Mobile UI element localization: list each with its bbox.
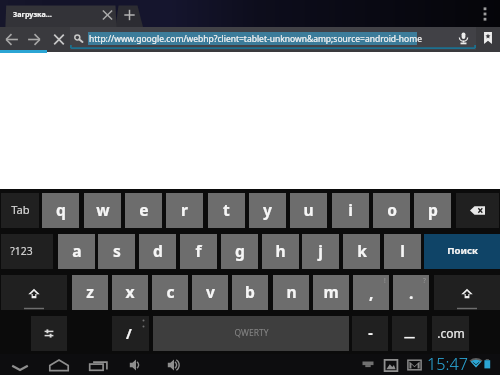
button[interactable]: m bbox=[313, 275, 349, 310]
button[interactable]: Поиск bbox=[424, 234, 500, 269]
staticText: a bbox=[72, 240, 82, 261]
button[interactable]: c bbox=[152, 275, 188, 310]
button[interactable]: l bbox=[384, 234, 421, 269]
button[interactable]: Volume down bbox=[128, 357, 150, 373]
button[interactable]: i bbox=[332, 193, 369, 228]
button[interactable]: — bbox=[392, 316, 427, 351]
staticText: Поиск bbox=[447, 244, 478, 257]
button[interactable]: QWERTY bbox=[153, 316, 349, 351]
staticText: - bbox=[368, 323, 373, 342]
staticText: p bbox=[428, 199, 438, 220]
staticText: r bbox=[181, 199, 188, 220]
button[interactable]: t bbox=[208, 193, 245, 228]
staticText: x bbox=[125, 281, 135, 302]
button[interactable]: a bbox=[58, 234, 95, 269]
staticText: . bbox=[409, 282, 414, 303]
staticText: t bbox=[223, 199, 230, 220]
staticText: ?123 bbox=[10, 244, 33, 258]
button[interactable]: b bbox=[232, 275, 268, 310]
button[interactable]: Backspace bbox=[456, 193, 499, 228]
staticText: q bbox=[56, 199, 66, 220]
staticText: Загрузка… bbox=[13, 9, 52, 19]
button[interactable]: f bbox=[180, 234, 217, 269]
staticText: z bbox=[86, 281, 94, 302]
staticText: j bbox=[318, 240, 323, 261]
staticText: g bbox=[235, 240, 245, 261]
staticText: i bbox=[348, 199, 353, 220]
button[interactable]: Back bbox=[1, 28, 23, 51]
button[interactable]: Bookmarks bbox=[482, 32, 494, 44]
button[interactable]: w bbox=[84, 193, 121, 228]
staticText: d bbox=[153, 240, 163, 261]
button[interactable]: r bbox=[166, 193, 203, 228]
button[interactable]: g bbox=[221, 234, 258, 269]
button[interactable]: Shift bbox=[434, 275, 500, 310]
button[interactable]: Stop loading bbox=[48, 28, 70, 51]
button[interactable]: Hide keyboard bbox=[10, 357, 30, 372]
staticText: u bbox=[303, 199, 314, 220]
button[interactable]: Search bbox=[71, 30, 85, 47]
button[interactable]: Close tab bbox=[99, 7, 116, 23]
button[interactable]: .com bbox=[432, 316, 469, 351]
staticText: http://www.google.com/webhp?client=table… bbox=[89, 33, 422, 45]
button[interactable]: d bbox=[139, 234, 176, 269]
button[interactable] bbox=[1, 234, 53, 269]
button[interactable]: n bbox=[273, 275, 309, 310]
staticText: m bbox=[323, 281, 339, 302]
button[interactable]: USB connected bbox=[361, 360, 375, 370]
button[interactable]: Home bbox=[49, 357, 69, 373]
staticText: o bbox=[387, 199, 397, 220]
staticText: h bbox=[275, 240, 286, 261]
staticText: c bbox=[166, 281, 175, 302]
button[interactable]: s bbox=[98, 234, 135, 269]
button[interactable]: Battery bbox=[484, 358, 492, 373]
button[interactable]: More options bbox=[477, 4, 493, 24]
staticText: 15:47 bbox=[427, 353, 468, 374]
staticText: s bbox=[113, 240, 121, 261]
button[interactable]: u bbox=[290, 193, 327, 228]
staticText: l bbox=[400, 240, 405, 261]
button[interactable]: v bbox=[192, 275, 228, 310]
staticText: v bbox=[206, 281, 215, 302]
staticText: ! bbox=[384, 276, 386, 285]
button[interactable]: - bbox=[352, 316, 388, 351]
staticText: ? bbox=[423, 276, 426, 285]
button[interactable]: ?123 bbox=[0, 234, 47, 269]
staticText: Tab bbox=[11, 202, 30, 217]
button[interactable]: h bbox=[262, 234, 299, 269]
staticText: b bbox=[245, 281, 255, 302]
button[interactable]: Volume up bbox=[166, 357, 188, 373]
button[interactable]: k bbox=[343, 234, 380, 269]
button[interactable]: ? bbox=[393, 275, 429, 310]
button[interactable]: o bbox=[373, 193, 410, 228]
staticText: / bbox=[126, 324, 132, 343]
button[interactable]: j bbox=[302, 234, 339, 269]
button[interactable]: Input method settings bbox=[31, 316, 67, 351]
button[interactable]: Wi-Fi bbox=[469, 358, 483, 373]
button[interactable]: q bbox=[42, 193, 79, 228]
button[interactable]: Email bbox=[407, 359, 422, 371]
staticText: , bbox=[369, 282, 374, 303]
staticText: k bbox=[357, 240, 367, 261]
button[interactable]: / bbox=[112, 316, 149, 351]
button[interactable]: Forward bbox=[23, 28, 45, 51]
staticText: y bbox=[263, 199, 272, 220]
button[interactable]: e bbox=[125, 193, 162, 228]
staticText: .com bbox=[437, 325, 465, 341]
button[interactable]: y bbox=[249, 193, 286, 228]
button[interactable]: New tab bbox=[121, 7, 138, 23]
button[interactable]: Tab bbox=[1, 193, 39, 228]
staticText: f bbox=[195, 240, 202, 261]
button[interactable]: ! bbox=[353, 275, 389, 310]
staticText: w bbox=[96, 199, 110, 220]
button[interactable]: Voice search bbox=[457, 32, 470, 45]
staticText: e bbox=[139, 199, 149, 220]
button[interactable]: Recent apps bbox=[88, 357, 110, 373]
button[interactable]: x bbox=[112, 275, 148, 310]
staticText: QWERTY bbox=[234, 327, 269, 339]
staticText: — bbox=[404, 329, 415, 344]
button[interactable]: Shift bbox=[1, 275, 67, 310]
button[interactable]: p bbox=[414, 193, 451, 228]
button[interactable]: Screenshot bbox=[384, 359, 398, 372]
button[interactable]: z bbox=[72, 275, 108, 310]
